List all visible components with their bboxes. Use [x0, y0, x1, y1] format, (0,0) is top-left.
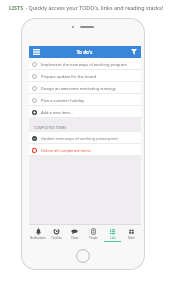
staticText: Update new ways of working powerpoint: [41, 136, 118, 141]
button[interactable]: Delete all completed items: [29, 144, 141, 156]
staticText: Chats: [71, 236, 78, 240]
staticText: Delete all completed items: [41, 148, 91, 153]
staticText: Lists: [110, 236, 116, 240]
button[interactable]: Plan a summer holiday: [29, 94, 141, 106]
staticText: Plan a summer holiday: [41, 98, 85, 103]
staticText: Prepare update for the board: [41, 74, 97, 79]
button[interactable]: Prepare update for the board: [29, 70, 141, 82]
button[interactable]: Notifications: [29, 225, 47, 242]
button[interactable]: People: [84, 225, 103, 242]
button[interactable]: Open navigation menu: [29, 46, 43, 58]
button[interactable]: Update new ways of working powerpoint: [29, 132, 141, 144]
staticText: Design an awesome marketing strategy: [41, 86, 116, 91]
button[interactable]: Design an awesome marketing strategy: [29, 82, 141, 94]
button[interactable]: More: [122, 225, 141, 242]
staticText: COMPLETED ITEMS: [34, 125, 67, 130]
button[interactable]: Filter: [126, 46, 141, 58]
button[interactable]: Implement the new ways of working progra…: [29, 58, 141, 70]
staticText: People: [89, 236, 98, 240]
button[interactable]: Add a new item...: [29, 106, 141, 118]
staticText: LISTS: [9, 4, 24, 11]
button[interactable]: Lists: [103, 225, 122, 242]
staticText: To do's: [43, 49, 126, 55]
staticText: More: [128, 236, 135, 240]
staticText: - Quickly access your TODO's, links and …: [24, 4, 164, 11]
button[interactable]: Timeline: [47, 225, 65, 242]
button[interactable]: Chats: [65, 225, 84, 242]
staticText: Notifications: [30, 236, 46, 240]
staticText: Timeline: [51, 236, 62, 240]
staticText: Add a new item...: [41, 110, 74, 115]
staticText: Implement the new ways of working progra…: [41, 62, 127, 67]
